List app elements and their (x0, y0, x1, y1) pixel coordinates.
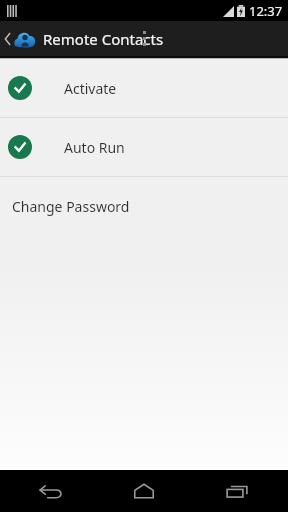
staticText: Auto Run (64, 138, 125, 157)
button[interactable]: Navigate up, Remote Contacts (0, 29, 172, 49)
staticText: Activate (64, 79, 117, 98)
staticText: 12:37 (249, 2, 283, 20)
button[interactable]: Recent apps (195, 470, 279, 512)
button[interactable]: Back (9, 470, 93, 512)
button[interactable]: Home (102, 470, 186, 512)
button[interactable]: Change Password (0, 177, 288, 235)
button[interactable]: More options (0, 21, 288, 56)
button[interactable]: Activate (0, 59, 288, 117)
button[interactable]: Auto Run (0, 118, 288, 176)
staticText: Remote Contacts (43, 29, 164, 49)
staticText: Change Password (12, 197, 130, 216)
